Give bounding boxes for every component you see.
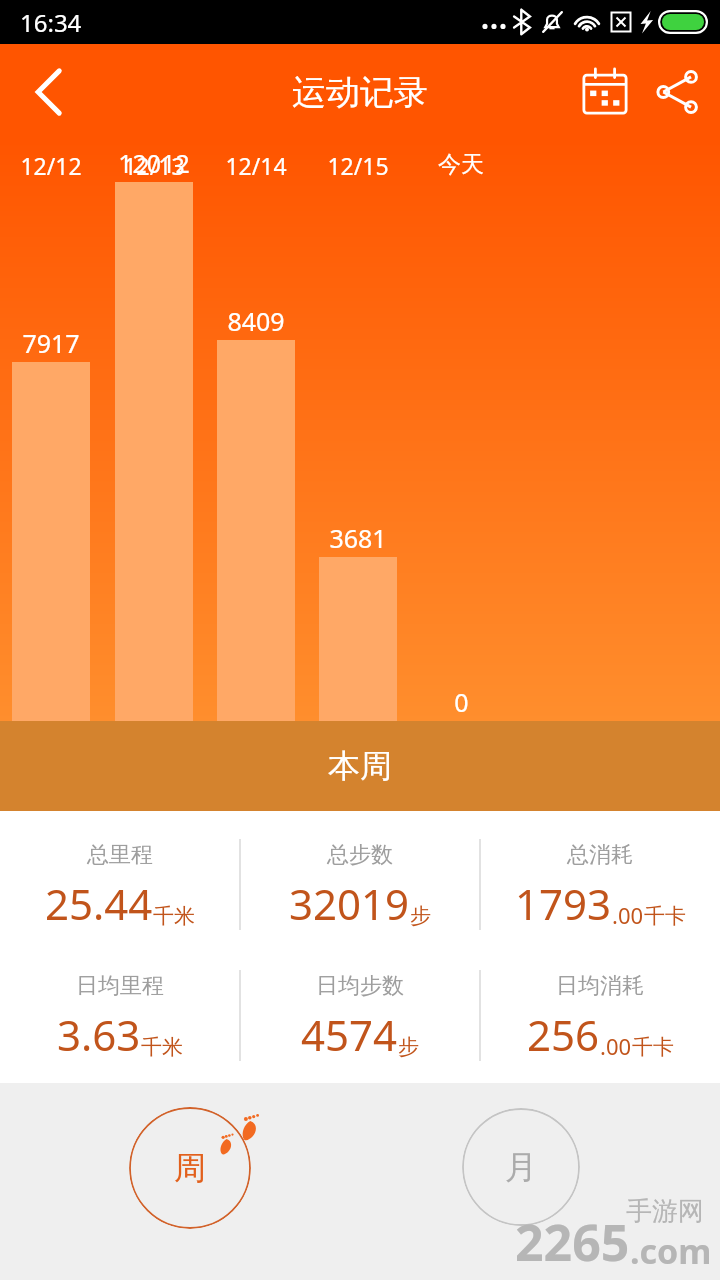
staticText: .00: [612, 900, 644, 930]
staticText: .00: [600, 1031, 632, 1061]
staticText: 12/15: [327, 150, 389, 181]
button[interactable]: 日均步数: [240, 952, 480, 1083]
staticText: 1793: [515, 875, 612, 932]
staticText: 千米: [153, 903, 195, 929]
staticText: 日均消耗: [556, 972, 644, 1000]
button[interactable]: Share: [650, 64, 706, 120]
staticText: 12/14: [225, 150, 287, 181]
staticText: 手游网: [626, 1195, 704, 1228]
staticText: 周: [174, 1148, 206, 1188]
staticText: 运动记录: [292, 71, 428, 114]
staticText: 月: [505, 1147, 537, 1187]
staticText: 总消耗: [567, 841, 633, 869]
staticText: 12/13: [123, 150, 185, 181]
staticText: 0: [454, 685, 469, 719]
staticText: 日均里程: [76, 972, 164, 1000]
button[interactable]: 月: [462, 1108, 580, 1226]
staticText: 总里程: [87, 841, 153, 869]
staticText: 千卡: [632, 1034, 674, 1060]
button[interactable]: Calendar: [574, 61, 636, 123]
staticText: 8409: [227, 304, 285, 338]
staticText: 32019: [289, 875, 410, 932]
staticText: 千米: [141, 1034, 183, 1060]
staticText: 千卡: [644, 903, 686, 929]
staticText: 3.63: [57, 1006, 141, 1063]
staticText: 今天: [438, 150, 484, 179]
staticText: 总步数: [327, 841, 393, 869]
staticText: 7917: [22, 326, 80, 360]
staticText: .com: [630, 1228, 712, 1274]
staticText: 步: [398, 1034, 419, 1060]
staticText: 本周: [328, 746, 392, 786]
staticText: 2265: [515, 1208, 630, 1276]
staticText: 12012: [118, 146, 190, 180]
staticText: 4574: [301, 1006, 398, 1063]
other: Steps: [216, 1111, 278, 1173]
staticText: 16:34: [20, 6, 82, 39]
button[interactable]: 总消耗: [480, 821, 720, 952]
staticText: 256: [527, 1006, 600, 1063]
staticText: 步: [410, 903, 431, 929]
button[interactable]: 周: [129, 1107, 251, 1229]
button[interactable]: 日均消耗: [480, 952, 720, 1083]
staticText: 日均步数: [316, 972, 404, 1000]
button[interactable]: 总步数: [240, 821, 480, 952]
button[interactable]: 本周: [0, 721, 720, 811]
button[interactable]: 总里程: [0, 821, 240, 952]
staticText: 3681: [329, 521, 387, 555]
button[interactable]: Back: [14, 57, 84, 127]
button[interactable]: 日均里程: [0, 952, 240, 1083]
staticText: 12/12: [20, 150, 82, 181]
staticText: 25.44: [45, 875, 153, 932]
